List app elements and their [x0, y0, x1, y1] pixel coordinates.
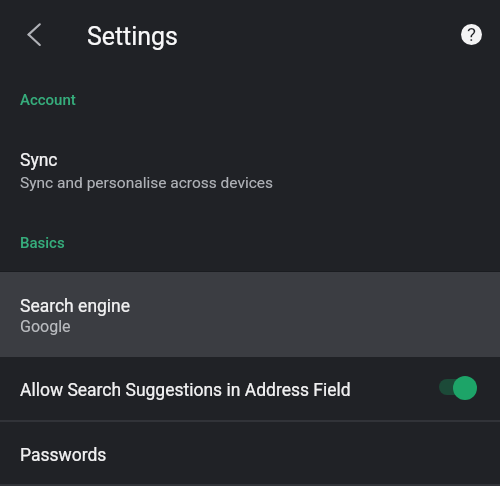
button[interactable]: Search engine — [0, 272, 500, 357]
staticText: Search engine — [20, 296, 131, 317]
button[interactable]: Help — [450, 13, 492, 55]
button[interactable]: Sync — [0, 130, 500, 210]
staticText: Allow Search Suggestions in Address Fiel… — [20, 380, 351, 401]
button[interactable]: Allow Search Suggestions in Address Fiel… — [0, 357, 500, 419]
staticText: Sync and personalise across devices — [20, 174, 274, 192]
staticText: Passwords — [20, 445, 107, 466]
staticText: Sync — [20, 150, 58, 171]
staticText: Account — [20, 91, 76, 109]
staticText: Settings — [87, 22, 178, 51]
staticText: Google — [20, 317, 71, 336]
staticText: ? — [467, 24, 476, 44]
button[interactable]: Passwords — [0, 421, 500, 483]
button[interactable]: Allow search suggestions, on — [438, 376, 478, 402]
button[interactable]: Navigate up — [13, 13, 55, 55]
staticText: Basics — [20, 234, 65, 252]
